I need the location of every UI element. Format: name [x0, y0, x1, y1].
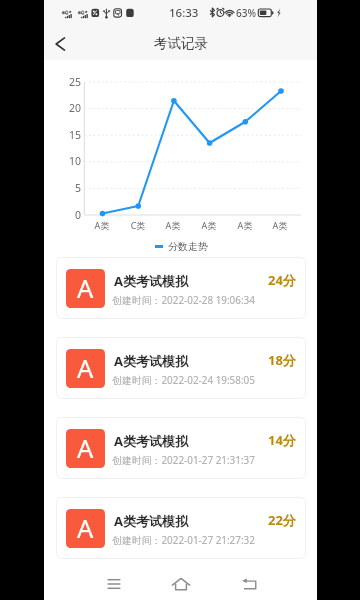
staticText: 63% [236, 6, 256, 20]
staticText: A [77, 271, 94, 306]
staticText: A类 [195, 219, 223, 231]
button[interactable]: Back [45, 29, 75, 59]
staticText: 25 [51, 75, 81, 89]
staticText: A类 [159, 219, 187, 231]
staticText: A [77, 511, 94, 546]
button[interactable]: Recent apps [96, 566, 132, 600]
staticText: 5 [51, 181, 81, 195]
staticText: 创建时间：2022-01-27 21:27:32 [112, 533, 255, 547]
button[interactable]: Back [232, 566, 268, 600]
button[interactable]: Home [163, 566, 199, 600]
button[interactable]: A [56, 417, 306, 479]
staticText: 创建时间：2022-02-28 19:06:34 [112, 293, 255, 307]
staticText: 22分 [268, 511, 296, 529]
staticText: 20 [51, 101, 81, 115]
staticText: 0 [51, 208, 81, 222]
staticText: 考试记录 [154, 35, 208, 52]
staticText: 24分 [268, 271, 296, 289]
staticText: A [77, 351, 94, 386]
staticText: A类考试模拟 [114, 352, 188, 370]
staticText: 分数走势 [168, 240, 208, 253]
button[interactable]: A [56, 497, 306, 559]
staticText: A类考试模拟 [114, 432, 188, 450]
staticText: C类 [124, 219, 152, 231]
staticText: 14分 [268, 431, 296, 449]
staticText: 10 [51, 154, 81, 168]
staticText: 创建时间：2022-02-24 19:58:05 [112, 373, 255, 387]
button[interactable]: A [56, 337, 306, 399]
staticText: A类 [266, 219, 294, 231]
staticText: 15 [51, 128, 81, 142]
staticText: A类考试模拟 [114, 512, 188, 530]
staticText: A [77, 431, 94, 466]
staticText: A类考试模拟 [114, 272, 188, 290]
staticText: 18分 [268, 351, 296, 369]
staticText: A类 [88, 219, 116, 231]
staticText: A类 [231, 219, 259, 231]
staticText: 16:33 [169, 5, 199, 21]
button[interactable]: A [56, 257, 306, 319]
staticText: 创建时间：2022-01-27 21:31:37 [112, 453, 255, 467]
